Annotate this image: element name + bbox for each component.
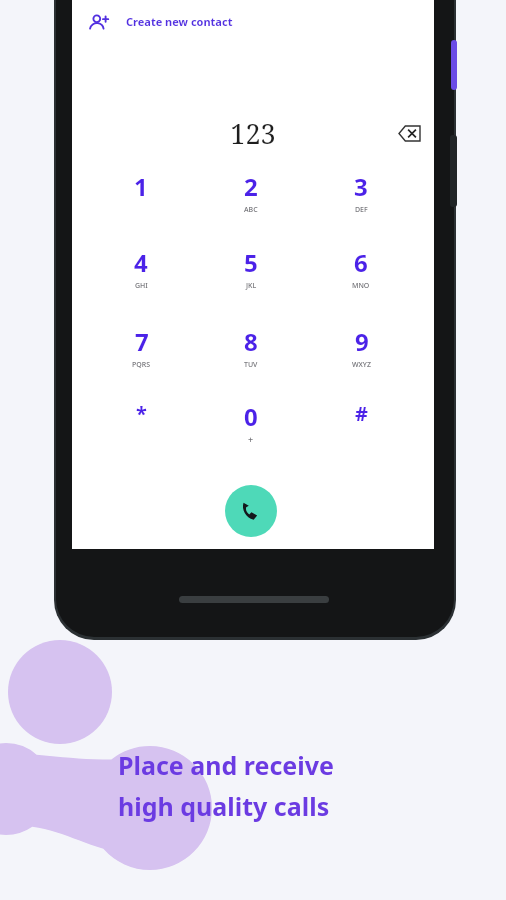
staticText: JKL [246, 281, 257, 291]
button[interactable]: 4 [101, 246, 181, 300]
staticText: # [355, 400, 368, 427]
button[interactable]: 9 [321, 325, 401, 379]
staticText: 8 [244, 325, 258, 358]
staticText: 6 [354, 246, 368, 279]
button[interactable]: # [321, 400, 401, 454]
staticText: 2 [244, 170, 258, 203]
button[interactable]: 5 [211, 246, 291, 300]
staticText: 1 [134, 170, 148, 203]
staticText: 4 [134, 246, 148, 279]
button[interactable]: 7 [101, 325, 181, 379]
button[interactable]: 3 [321, 170, 401, 224]
staticText: WXYZ [352, 360, 371, 370]
staticText: 7 [135, 325, 149, 358]
staticText: DEF [355, 205, 368, 215]
staticText: 9 [355, 325, 369, 358]
staticText: ABC [244, 205, 258, 215]
staticText: * [136, 400, 147, 427]
button[interactable]: 1 [101, 170, 181, 224]
button[interactable]: * [101, 400, 181, 454]
staticText: 3 [354, 170, 368, 203]
button[interactable]: Backspace [390, 114, 428, 152]
staticText: 123 [72, 115, 434, 155]
staticText: 0 [244, 400, 258, 433]
staticText: Create new contact [126, 14, 233, 29]
staticText: TUV [244, 360, 258, 370]
staticText: GHI [135, 281, 148, 291]
staticText: + [248, 433, 254, 445]
staticText: 5 [244, 246, 258, 279]
button[interactable]: 6 [321, 246, 401, 300]
staticText: Place and receive [118, 748, 334, 782]
button[interactable]: Create new contact [82, 6, 302, 38]
staticText: MNO [352, 281, 370, 291]
button[interactable]: 8 [211, 325, 291, 379]
other: Volume button [450, 135, 457, 207]
button[interactable]: Call [225, 485, 277, 537]
other: Power button [451, 40, 457, 90]
staticText: PQRS [132, 360, 151, 370]
button[interactable]: 0 [211, 400, 291, 454]
staticText: high quality calls [118, 789, 330, 823]
button[interactable]: 2 [211, 170, 291, 224]
